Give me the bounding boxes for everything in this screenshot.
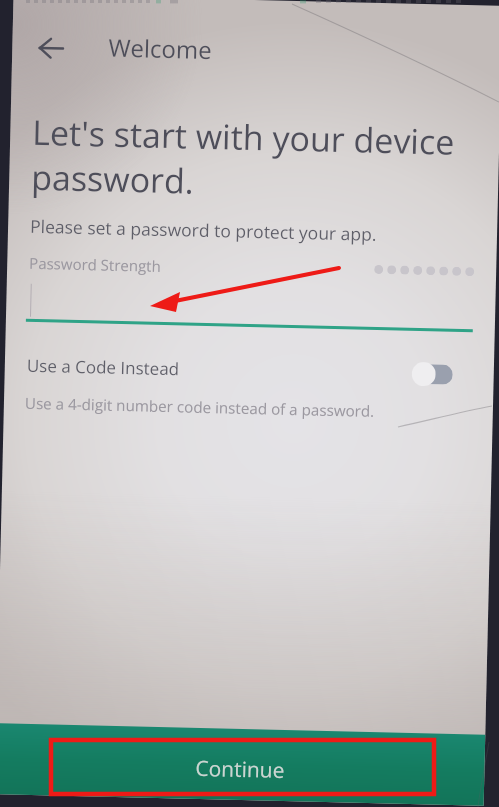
staticText: Please set a password to protect your ap… [30,214,377,246]
staticText: Password Strength [29,253,161,276]
button[interactable]: Welcome [108,31,213,66]
staticText: Use a Code Instead [27,354,180,380]
staticText: Continue [195,754,286,785]
staticText: Use a 4-digit number code instead of a p… [25,393,375,422]
button[interactable]: Use a Code Instead [26,349,453,391]
button[interactable]: Back [32,29,71,68]
button[interactable]: Continue [0,723,485,806]
staticText: Welcome [108,31,213,66]
staticText: Let's start with your device password. [31,109,463,210]
